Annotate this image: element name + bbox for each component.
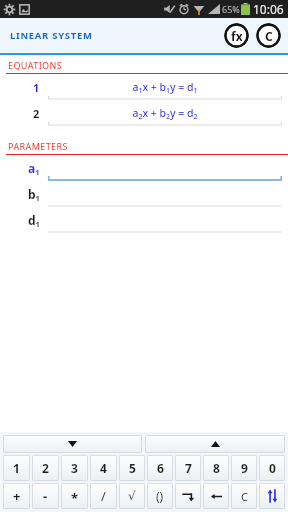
staticText: * xyxy=(71,489,79,507)
staticText: a1 xyxy=(28,160,40,177)
staticText: C xyxy=(241,489,248,504)
staticText: 6 xyxy=(157,460,164,476)
staticText: 3 xyxy=(71,460,78,476)
staticText: 5 xyxy=(129,460,136,476)
button[interactable]: 7 xyxy=(175,455,201,481)
button[interactable]: d1 xyxy=(0,207,288,233)
staticText: / xyxy=(101,487,106,505)
staticText: () xyxy=(156,488,164,504)
staticText: LINEAR SYSTEM xyxy=(10,29,93,42)
button[interactable]: Parentheses xyxy=(147,483,173,509)
button[interactable]: Scroll up xyxy=(145,435,285,453)
staticText: √ xyxy=(128,489,136,503)
button[interactable]: 3 xyxy=(61,455,88,481)
button[interactable]: b1 xyxy=(0,181,288,207)
staticText: 8 xyxy=(213,460,220,476)
button[interactable]: a1 xyxy=(0,155,288,181)
button[interactable]: Plus xyxy=(3,483,30,509)
staticText: 9 xyxy=(241,460,248,476)
button[interactable]: 0 xyxy=(259,455,285,481)
staticText: + xyxy=(13,487,21,505)
staticText: 1 xyxy=(33,80,40,95)
staticText: a2x + b2y = d2 xyxy=(48,106,282,121)
button[interactable]: Next field xyxy=(175,483,201,509)
button[interactable]: 2 xyxy=(32,455,59,481)
staticText: PARAMETERS xyxy=(8,140,68,152)
button[interactable]: 5 xyxy=(119,455,145,481)
button[interactable]: Functions xyxy=(224,23,249,48)
staticText: 2 xyxy=(42,460,49,476)
staticText: fx xyxy=(231,28,243,44)
staticText: - xyxy=(43,487,48,505)
button[interactable]: Multiply xyxy=(61,483,88,509)
button[interactable]: 6 xyxy=(147,455,173,481)
button[interactable]: Swap xyxy=(259,483,285,509)
button[interactable]: Clear xyxy=(256,23,281,48)
staticText: 1 xyxy=(13,460,20,476)
staticText: 0 xyxy=(269,460,276,476)
staticText: d1 xyxy=(28,212,40,229)
button[interactable]: 8 xyxy=(203,455,229,481)
button[interactable]: 4 xyxy=(90,455,117,481)
staticText: b1 xyxy=(28,186,40,203)
button[interactable]: Minus xyxy=(32,483,59,509)
staticText: 7 xyxy=(185,460,192,476)
staticText: 4 xyxy=(100,460,107,476)
button[interactable]: Square root xyxy=(119,483,145,509)
staticText: a1x + b1y = d1 xyxy=(48,80,282,95)
button[interactable]: LINEAR SYSTEM xyxy=(0,23,101,48)
button[interactable]: Clear xyxy=(231,483,257,509)
staticText: 65% xyxy=(222,3,240,15)
button[interactable]: Scroll down xyxy=(3,435,142,453)
staticText: 2 xyxy=(33,106,40,121)
staticText: C xyxy=(265,28,273,44)
button[interactable]: Divide xyxy=(90,483,117,509)
button[interactable]: 2 xyxy=(0,100,288,126)
button[interactable]: 9 xyxy=(231,455,257,481)
staticText: 10:06 xyxy=(253,1,284,17)
button[interactable]: Backspace xyxy=(203,483,229,509)
staticText: EQUATIONS xyxy=(8,59,63,71)
button[interactable]: 1 xyxy=(0,74,288,100)
button[interactable]: 1 xyxy=(3,455,30,481)
